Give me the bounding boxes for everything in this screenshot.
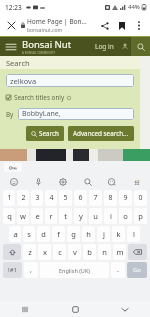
button[interactable]: English (UK): [40, 262, 109, 278]
staticText: By: [6, 110, 14, 119]
button[interactable]: t: [59, 208, 72, 224]
button[interactable]: Account: [118, 37, 131, 56]
button[interactable]: Voice input: [31, 175, 46, 188]
button[interactable]: n: [98, 244, 111, 260]
staticText: 8: [108, 193, 113, 203]
button[interactable]: Home: [50, 301, 100, 317]
button[interactable]: Search titles only: [6, 93, 71, 102]
button[interactable]: e: [31, 208, 43, 224]
button[interactable]: Search: [31, 129, 59, 138]
staticText: e: [35, 211, 40, 221]
button[interactable]: Shift: [3, 244, 21, 260]
staticText: 6: [78, 193, 83, 203]
staticText: 7: [93, 193, 98, 203]
button[interactable]: Emoji: [6, 175, 21, 188]
button[interactable]: i: [104, 208, 117, 224]
staticText: 9: [123, 193, 128, 203]
staticText: zelkova: [10, 76, 37, 86]
button[interactable]: a: [9, 226, 21, 242]
button[interactable]: m: [113, 244, 126, 260]
button[interactable]: r: [45, 208, 57, 224]
button[interactable]: f: [52, 226, 65, 242]
button[interactable]: .: [111, 262, 125, 278]
button[interactable]: Home Page | Bon...: [27, 17, 96, 34]
button[interactable]: q: [3, 208, 15, 224]
button[interactable]: s: [23, 226, 35, 242]
button[interactable]: Bonsai Nut: [22, 38, 95, 55]
staticText: l: [133, 229, 135, 239]
button[interactable]: 5: [59, 190, 72, 206]
staticText: m: [116, 247, 124, 257]
staticText: Log in: [95, 42, 114, 51]
button[interactable]: 4: [45, 190, 57, 206]
staticText: x: [43, 247, 47, 257]
button[interactable]: zelkova: [6, 74, 134, 87]
staticText: .: [117, 265, 119, 275]
button[interactable]: 8: [104, 190, 117, 206]
button[interactable]: 9: [119, 190, 132, 206]
staticText: j: [103, 229, 105, 239]
staticText: English (UK): [59, 267, 90, 274]
button[interactable]: Backspace: [128, 244, 147, 260]
button[interactable]: Recent apps: [0, 301, 50, 317]
button[interactable]: Keyboard settings: [55, 175, 70, 188]
staticText: Bonsai Nut: [22, 38, 72, 51]
button[interactable]: v: [68, 244, 81, 260]
button[interactable]: Clipboard suggestion: [4, 163, 22, 172]
button[interactable]: w: [17, 208, 29, 224]
button[interactable]: 1: [3, 190, 15, 206]
button[interactable]: BobbyLane,: [18, 108, 134, 120]
staticText: a: [13, 229, 18, 239]
button[interactable]: Share: [96, 17, 113, 34]
button[interactable]: x: [38, 244, 51, 260]
button[interactable]: l: [127, 226, 140, 242]
button[interactable]: Stickers: [104, 175, 119, 188]
button[interactable]: 6: [74, 190, 87, 206]
button[interactable]: z: [23, 244, 36, 260]
staticText: n: [102, 247, 107, 257]
button[interactable]: b: [83, 244, 96, 260]
button[interactable]: Search: [80, 175, 95, 188]
button[interactable]: Search: [131, 37, 150, 56]
staticText: i: [110, 211, 112, 221]
button[interactable]: Log in: [95, 37, 114, 56]
button[interactable]: More options: [130, 17, 147, 34]
staticText: b: [87, 247, 92, 257]
staticText: t: [64, 211, 67, 221]
staticText: h: [86, 229, 91, 239]
staticText: !#1: [8, 266, 17, 274]
button[interactable]: Advanced search...: [73, 129, 129, 138]
button[interactable]: p: [134, 208, 147, 224]
staticText: A BONSAI COMMUNITY: [22, 51, 56, 55]
button[interactable]: k: [112, 226, 125, 242]
button[interactable]: Menu: [0, 37, 22, 56]
button[interactable]: !#1: [3, 262, 22, 278]
button[interactable]: j: [97, 226, 110, 242]
staticText: BobbyLane,: [22, 109, 61, 119]
button[interactable]: 3: [31, 190, 43, 206]
button[interactable]: Go: [127, 262, 147, 278]
staticText: 2: [21, 193, 26, 203]
staticText: z: [28, 247, 32, 257]
button[interactable]: c: [53, 244, 66, 260]
staticText: g: [71, 229, 76, 239]
button[interactable]: 2: [17, 190, 29, 206]
button[interactable]: 7: [89, 190, 102, 206]
button[interactable]: Bookmark: [113, 17, 130, 34]
button[interactable]: o: [119, 208, 132, 224]
button[interactable]: ,: [24, 262, 38, 278]
button[interactable]: More: [129, 175, 144, 188]
button[interactable]: d: [37, 226, 50, 242]
button[interactable]: h: [82, 226, 95, 242]
staticText: o: [123, 211, 128, 221]
staticText: 0: [138, 193, 143, 203]
button[interactable]: g: [67, 226, 80, 242]
staticText: r: [49, 211, 53, 221]
button[interactable]: Hide keyboard: [100, 301, 150, 317]
staticText: s: [27, 229, 31, 239]
button[interactable]: y: [74, 208, 87, 224]
button[interactable]: Close tab: [3, 17, 19, 33]
button[interactable]: u: [89, 208, 102, 224]
staticText: w: [20, 211, 26, 221]
button[interactable]: 0: [134, 190, 147, 206]
